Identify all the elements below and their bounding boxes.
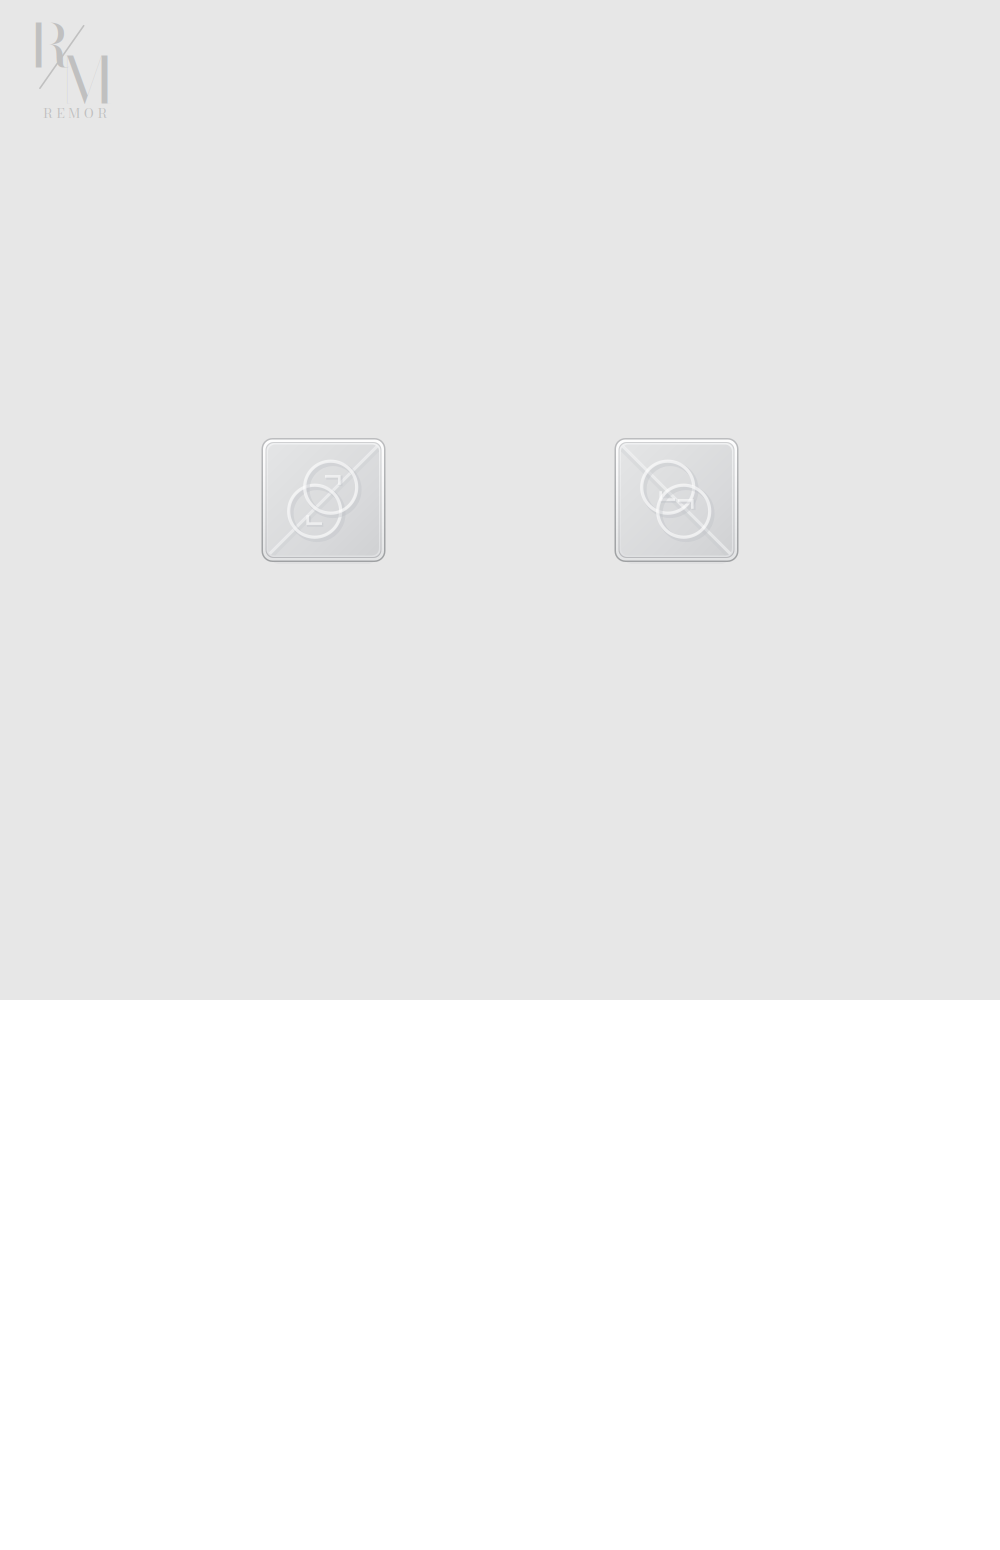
staticText: M [61,33,113,129]
button[interactable]: Product photo, tap to zoom [0,0,1000,1000]
staticText: REMOR [43,103,107,123]
button[interactable]: REMOR [18,0,178,138]
staticText: R [28,0,70,91]
